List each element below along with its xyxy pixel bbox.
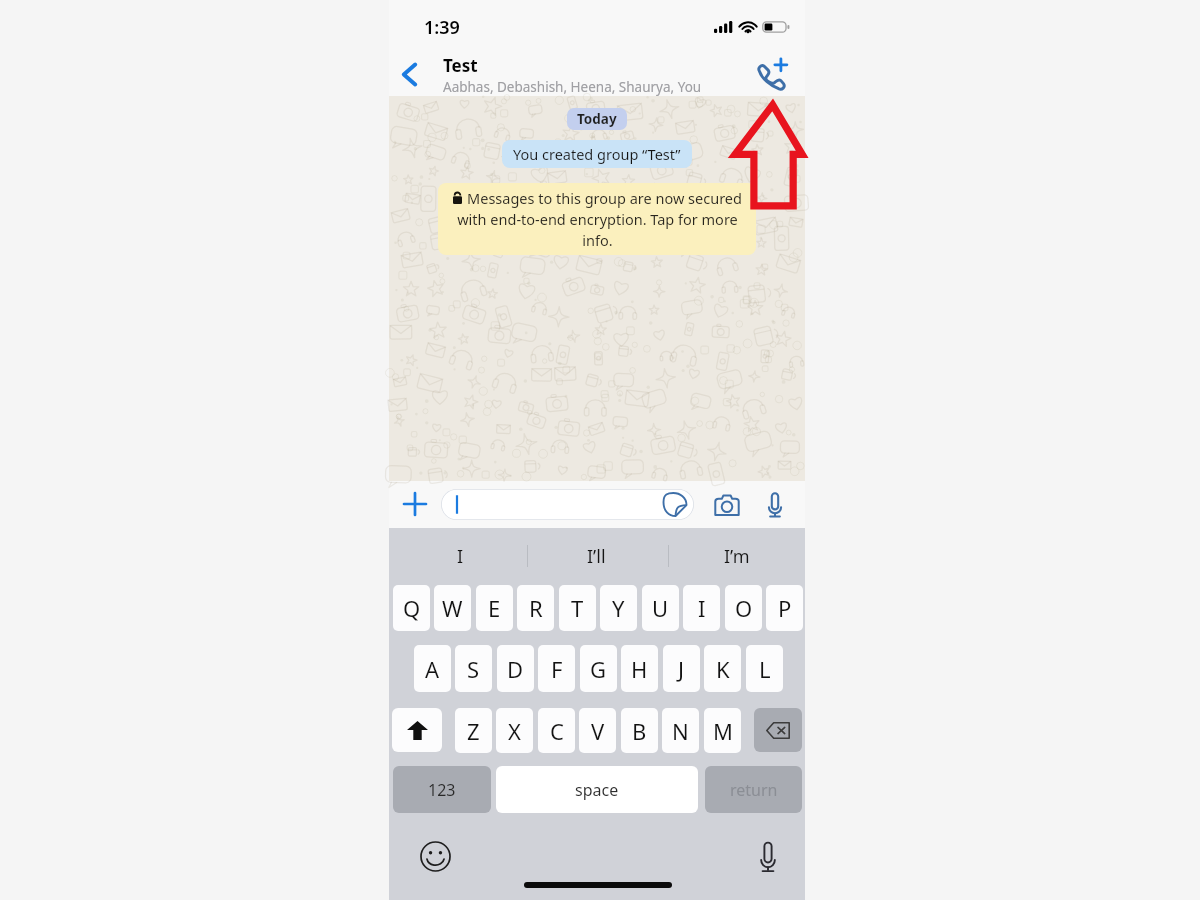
button[interactable]: Add participant call <box>745 52 795 98</box>
staticText: N <box>672 716 689 746</box>
staticText: Messages to this group are now secured <box>467 188 742 208</box>
button[interactable]: G <box>580 645 617 692</box>
button[interactable]: H <box>621 645 658 692</box>
staticText: J <box>678 654 685 684</box>
button[interactable]: T <box>559 585 596 631</box>
staticText: M <box>713 716 733 746</box>
staticText: 1:39 <box>424 15 460 40</box>
staticText: with end-to-end encryption. Tap for more <box>457 209 738 229</box>
staticText: V <box>591 716 605 746</box>
staticText: F <box>551 654 563 684</box>
button[interactable]: F <box>538 645 575 692</box>
button[interactable]: I’ll <box>532 530 660 582</box>
button[interactable]: I <box>683 585 720 631</box>
staticText: I’ll <box>587 544 606 569</box>
staticText: U <box>652 593 669 623</box>
staticText: I <box>457 544 464 569</box>
staticText: Today <box>577 110 617 128</box>
button[interactable]: D <box>497 645 534 692</box>
staticText: return <box>730 779 778 801</box>
button[interactable]: V <box>579 708 616 753</box>
button[interactable]: E <box>476 585 513 631</box>
staticText: A <box>425 654 440 684</box>
button[interactable]: S <box>455 645 492 692</box>
staticText: D <box>507 654 524 684</box>
staticText: P <box>778 593 792 623</box>
staticText: Z <box>467 716 480 746</box>
button[interactable]: U <box>642 585 679 631</box>
button[interactable]: space <box>496 766 698 813</box>
button[interactable]: A <box>414 645 451 692</box>
button[interactable]: L <box>746 645 783 692</box>
staticText: E <box>488 593 501 623</box>
button[interactable]: K <box>704 645 741 692</box>
staticText: Y <box>612 593 625 623</box>
button[interactable]: Emoji keyboard <box>417 838 453 874</box>
button[interactable]: W <box>434 585 471 631</box>
staticText: You created group “Test” <box>513 144 681 164</box>
button[interactable]: Back <box>386 52 432 96</box>
button[interactable]: I’m <box>673 530 801 582</box>
button[interactable]: You created group “Test” <box>502 140 692 168</box>
staticText: info. <box>582 230 613 250</box>
staticText: W <box>442 593 463 623</box>
button[interactable]: O <box>725 585 762 631</box>
button[interactable]: C <box>538 708 575 753</box>
button[interactable]: X <box>496 708 533 753</box>
staticText: O <box>735 593 753 623</box>
button[interactable]: Messages to this group are now secured <box>438 183 756 255</box>
button[interactable]: Backspace <box>754 708 802 752</box>
staticText: K <box>716 654 730 684</box>
staticText: Test <box>443 54 478 77</box>
staticText: X <box>508 716 521 746</box>
button[interactable]: P <box>766 585 803 631</box>
button[interactable]: return <box>705 766 802 813</box>
staticText: R <box>529 593 543 623</box>
staticText: Aabhas, Debashish, Heena, Shaurya, You <box>443 78 702 96</box>
button[interactable] <box>441 489 694 520</box>
staticText: L <box>759 654 771 684</box>
staticText: I’m <box>724 544 750 569</box>
staticText: space <box>575 779 619 801</box>
staticText: G <box>590 654 607 684</box>
button[interactable]: Y <box>600 585 637 631</box>
button[interactable]: Shift <box>392 708 442 752</box>
button[interactable]: Today <box>567 108 627 130</box>
button[interactable]: Z <box>455 708 492 753</box>
button[interactable]: Dictation <box>750 839 786 875</box>
button[interactable]: J <box>663 645 700 692</box>
staticText: S <box>467 654 480 684</box>
button[interactable]: M <box>704 708 741 753</box>
button[interactable]: B <box>621 708 658 753</box>
button[interactable]: Attach <box>394 487 436 521</box>
button[interactable]: Voice message <box>755 488 795 522</box>
staticText: B <box>632 716 647 746</box>
staticText: I <box>698 593 706 623</box>
staticText: 123 <box>428 779 456 801</box>
button[interactable]: N <box>662 708 699 753</box>
button[interactable]: 123 <box>393 766 491 813</box>
button[interactable]: I <box>396 530 524 582</box>
button[interactable]: Camera <box>705 488 749 522</box>
staticText: T <box>571 593 584 623</box>
button[interactable]: Q <box>393 585 430 631</box>
button[interactable]: R <box>517 585 554 631</box>
staticText: C <box>550 716 564 746</box>
staticText: H <box>631 654 648 684</box>
staticText: Q <box>403 593 421 623</box>
